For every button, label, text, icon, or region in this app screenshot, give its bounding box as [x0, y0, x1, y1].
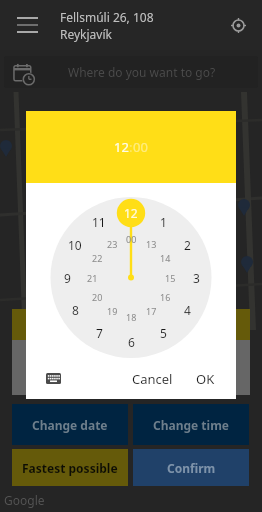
staticText: 18: [126, 311, 137, 323]
staticText: Where do you want to go?: [68, 64, 216, 80]
staticText: 7: [96, 325, 103, 341]
button[interactable]: 00: [133, 138, 148, 156]
button[interactable]: Confirm: [133, 449, 249, 486]
staticText: Change date: [32, 417, 108, 433]
staticText: 6: [128, 334, 135, 350]
staticText: 12: [124, 205, 138, 221]
staticText: Cancel: [132, 370, 173, 388]
staticText: 3: [193, 270, 200, 286]
staticText: Confirm: [167, 460, 216, 476]
staticText: 20: [92, 291, 103, 303]
button[interactable]: Where do you want to go?: [4, 56, 258, 88]
button[interactable]: [12, 309, 250, 340]
staticText: Fastest possible: [22, 460, 118, 476]
button[interactable]: Cancel: [128, 365, 177, 393]
staticText: 00: [126, 233, 137, 245]
staticText: Google: [4, 492, 45, 508]
staticText: 8: [72, 302, 79, 318]
staticText: 22: [92, 252, 103, 264]
button[interactable]: Fastest possible: [12, 449, 128, 486]
staticText: 15: [165, 272, 176, 284]
staticText: OK: [196, 370, 215, 388]
staticText: 1: [160, 214, 167, 230]
staticText: 2: [184, 237, 191, 253]
staticText: 23: [107, 238, 118, 250]
staticText: :: [129, 138, 133, 156]
staticText: 5: [160, 325, 167, 341]
staticText: 10: [68, 237, 82, 253]
staticText: 19: [107, 305, 118, 317]
staticText: Fellsmúli 26, 108: [60, 9, 154, 25]
staticText: 16: [160, 291, 171, 303]
button[interactable]: Menu: [14, 12, 40, 38]
button[interactable]: Change time: [133, 404, 249, 445]
staticText: 14: [160, 252, 171, 264]
staticText: 17: [146, 305, 157, 317]
button[interactable]: 12: [114, 138, 129, 156]
button[interactable]: Switch to keyboard input: [41, 366, 65, 390]
staticText: 4: [184, 302, 191, 318]
staticText: Change time: [153, 417, 230, 433]
button[interactable]: Change date: [12, 404, 128, 445]
staticText: 13: [146, 238, 157, 250]
staticText: 9: [64, 270, 71, 286]
button[interactable]: Set departure time: [11, 60, 38, 87]
staticText: 11: [92, 214, 106, 230]
staticText: 21: [87, 272, 98, 284]
staticText: Reykjavík: [60, 26, 112, 42]
button[interactable]: My location: [226, 13, 250, 37]
button[interactable]: OK: [192, 365, 219, 393]
